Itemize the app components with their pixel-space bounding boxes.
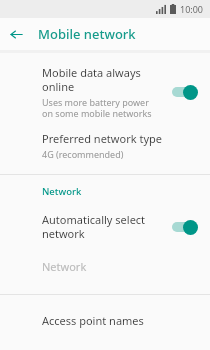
staticText: Network (42, 259, 87, 274)
staticText: 10:00 (180, 3, 204, 15)
button[interactable]: Back (0, 18, 32, 50)
button[interactable]: Toggle (170, 84, 200, 100)
staticText: 4G (recommended) (42, 148, 124, 160)
button[interactable]: Automatically select network (0, 206, 210, 247)
button[interactable]: Toggle (170, 219, 200, 235)
button[interactable]: Network (0, 253, 210, 282)
staticText: Access point names (42, 313, 144, 328)
staticText: Automatically select network (42, 212, 146, 241)
staticText: Network (42, 185, 82, 198)
button[interactable]: Mobile data always online (0, 59, 210, 125)
staticText: Mobile network (38, 25, 136, 43)
staticText: Mobile data always online (42, 65, 141, 94)
button[interactable]: Access point names (0, 309, 210, 336)
staticText: Preferred network type (42, 131, 162, 146)
button[interactable]: Preferred network type (0, 125, 210, 168)
staticText: Uses more battery power on some mobile n… (42, 96, 152, 119)
